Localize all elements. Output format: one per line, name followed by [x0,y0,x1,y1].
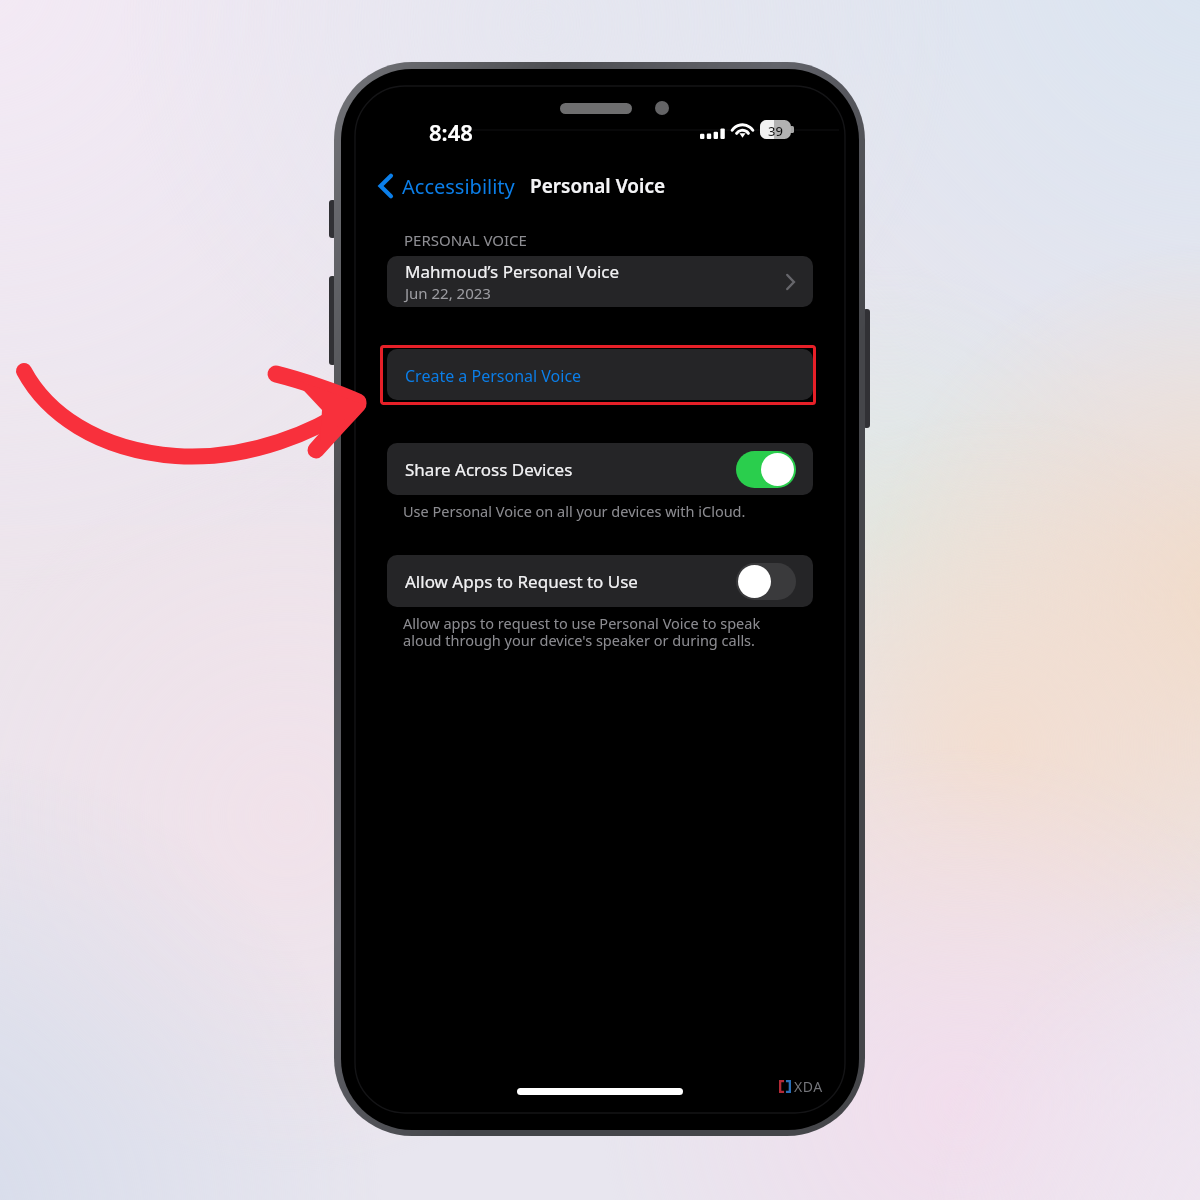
staticText: Allow apps to request to use Personal Vo… [403,613,783,650]
staticText: PERSONAL VOICE [404,230,527,250]
button[interactable]: Allow Apps to Request to Use [387,555,813,607]
staticText: Share Across Devices [405,458,573,481]
staticText: Mahmoud’s Personal Voice [405,260,620,283]
staticText: Allow Apps to Request to Use [405,570,638,593]
staticText: 39 [768,122,783,140]
button[interactable]: Back to Accessibility [372,168,522,204]
staticText: Accessibility [402,173,515,200]
staticText: Use Personal Voice on all your devices w… [403,501,783,521]
staticText: 8:48 [429,117,473,147]
staticText: Jun 22, 2023 [405,283,491,303]
staticText: Personal Voice [530,173,666,199]
button[interactable]: Create a Personal Voice [387,349,813,400]
staticText: XDA [794,1077,823,1096]
button[interactable]: Share Across Devices, on [736,451,796,488]
button[interactable]: Allow Apps to Request to Use, off [736,563,796,600]
button[interactable]: Share Across Devices [387,443,813,495]
staticText: Create a Personal Voice [405,365,582,387]
button[interactable]: Mahmoud’s Personal Voice [387,256,813,307]
